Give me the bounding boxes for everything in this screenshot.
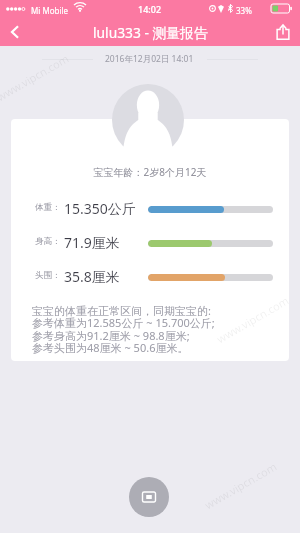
button[interactable]: Save image: [129, 477, 169, 517]
staticText: 2016年12月02日 14:01: [105, 53, 194, 65]
staticText: www.vipcn.com: [214, 293, 291, 346]
staticText: lulu333 - 测量报告: [93, 23, 208, 42]
staticText: 71.9厘米: [64, 233, 120, 249]
staticText: 宝宝年龄：2岁8个月12天: [11, 165, 289, 179]
staticText: 宝宝的体重在正常区间，同期宝宝的:: [32, 303, 211, 318]
staticText: 参考头围为48厘米 ~ 50.6厘米。: [32, 340, 189, 355]
button[interactable]: Back: [0, 18, 30, 46]
staticText: 15.350公斤: [64, 199, 136, 215]
staticText: 身高：: [35, 236, 61, 247]
staticText: 参考体重为12.585公斤 ~ 15.700公斤;: [32, 315, 215, 330]
staticText: 体重：: [35, 202, 61, 213]
staticText: 头围：: [35, 270, 61, 281]
staticText: 14:02: [138, 3, 162, 15]
staticText: 35.8厘米: [64, 267, 120, 283]
staticText: 33%: [236, 5, 252, 16]
button[interactable]: Share: [266, 18, 300, 46]
staticText: 参考身高为91.2厘米 ~ 98.8厘米;: [32, 328, 190, 343]
staticText: Mi Mobile: [31, 5, 69, 16]
